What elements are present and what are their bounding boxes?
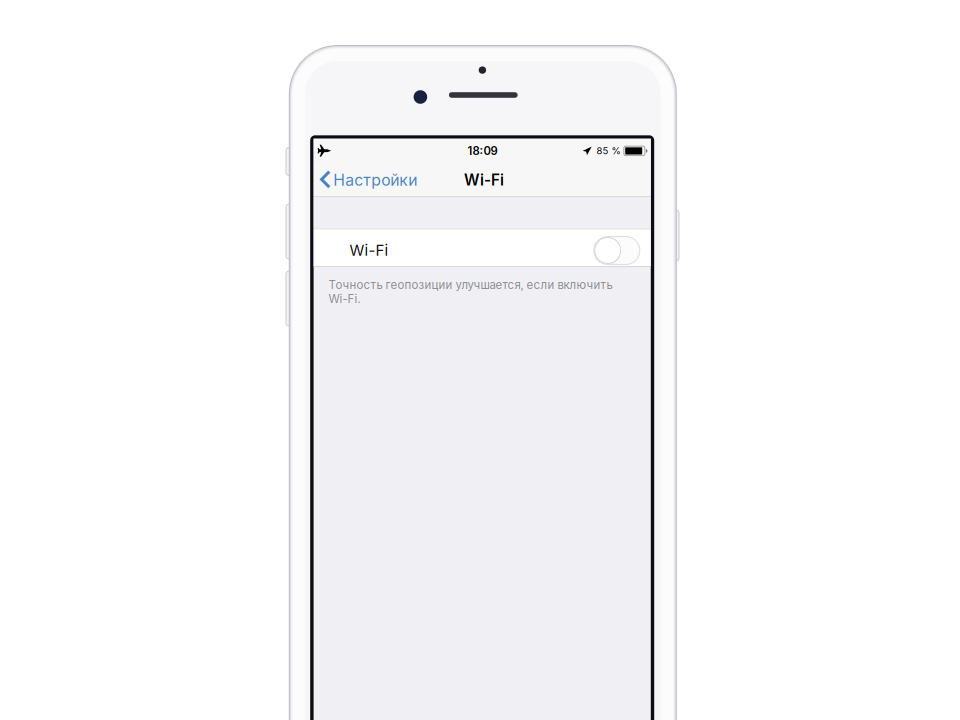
staticText: Wi-Fi [464, 171, 504, 189]
staticText: Wi-Fi [350, 241, 389, 259]
button[interactable]: Настройки [314, 161, 425, 196]
staticText: Точность геопозиции улучшается, если вкл… [329, 278, 613, 306]
button[interactable]: Wi-Fi [588, 234, 640, 262]
staticText: Настройки [333, 170, 417, 189]
staticText: 18:09 [467, 144, 497, 158]
staticText: 85 % [596, 145, 620, 157]
